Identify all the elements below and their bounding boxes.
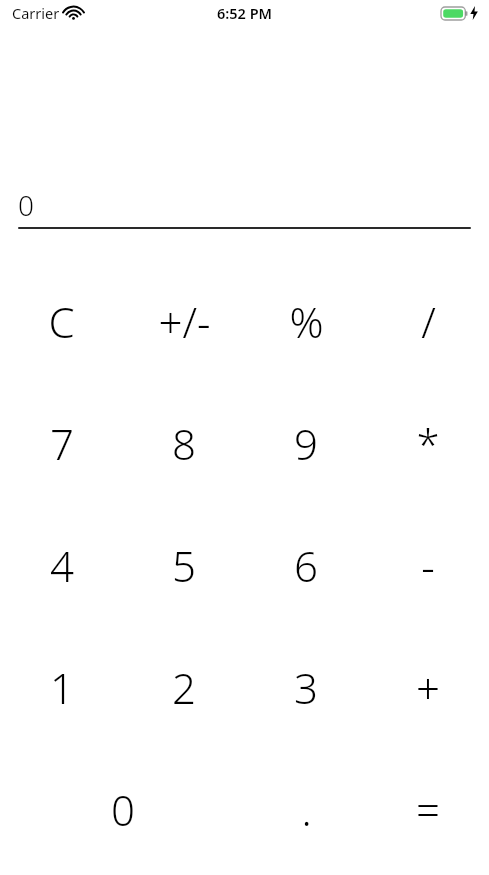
button[interactable]: +/-: [123, 260, 245, 382]
button[interactable]: 8: [123, 382, 245, 504]
staticText: *: [416, 415, 440, 472]
button[interactable]: 3: [245, 626, 367, 748]
button[interactable]: /: [367, 260, 489, 382]
staticText: =: [416, 781, 440, 838]
button[interactable]: .: [245, 748, 367, 870]
button[interactable]: 0: [0, 748, 245, 870]
button[interactable]: 6: [245, 504, 367, 626]
button[interactable]: +: [367, 626, 489, 748]
button[interactable]: 1: [0, 626, 123, 748]
staticText: 5: [172, 537, 196, 594]
staticText: 0: [111, 781, 135, 838]
button[interactable]: =: [367, 748, 489, 870]
staticText: .: [301, 781, 312, 838]
staticText: 3: [294, 659, 318, 716]
staticText: 2: [172, 659, 196, 716]
button[interactable]: -: [367, 504, 489, 626]
button[interactable]: 9: [245, 382, 367, 504]
staticText: 1: [50, 659, 74, 716]
button[interactable]: 5: [123, 504, 245, 626]
staticText: +: [416, 659, 440, 716]
button[interactable]: %: [245, 260, 367, 382]
staticText: -: [421, 537, 435, 594]
staticText: 6:52 PM: [217, 3, 273, 23]
button[interactable]: 2: [123, 626, 245, 748]
button[interactable]: 7: [0, 382, 123, 504]
staticText: 4: [50, 537, 74, 594]
staticText: /: [421, 293, 436, 350]
staticText: Carrier: [12, 3, 60, 23]
staticText: 9: [294, 415, 318, 472]
staticText: 0: [18, 186, 34, 224]
button[interactable]: C: [0, 260, 123, 382]
staticText: +/-: [158, 293, 211, 350]
button[interactable]: *: [367, 382, 489, 504]
staticText: %: [289, 293, 324, 350]
button[interactable]: 4: [0, 504, 123, 626]
staticText: 6: [294, 537, 318, 594]
staticText: 8: [172, 415, 196, 472]
staticText: C: [48, 293, 75, 350]
staticText: 7: [50, 415, 74, 472]
